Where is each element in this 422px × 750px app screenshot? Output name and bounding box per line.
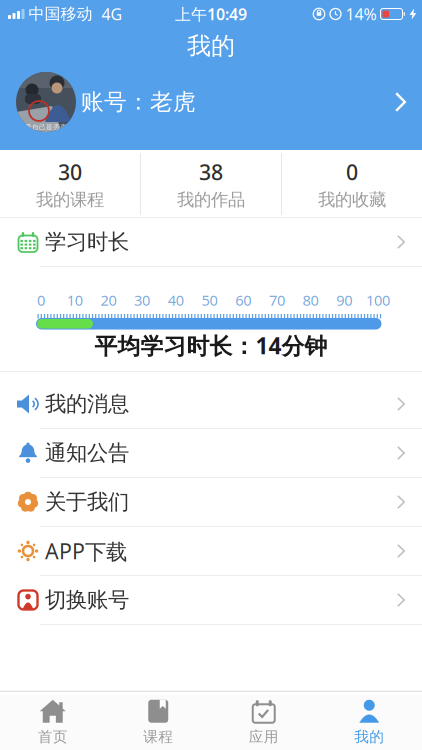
staticText: 30: [58, 158, 82, 186]
staticText: 学习时长: [45, 229, 129, 255]
staticText: 0: [37, 290, 45, 310]
staticText: 80: [303, 290, 319, 310]
staticText: 38: [199, 158, 223, 186]
button[interactable]: APP下载: [0, 527, 422, 576]
staticText: 我的课程: [36, 189, 104, 210]
button[interactable]: 学习时长: [0, 218, 422, 267]
button[interactable]: 30: [0, 158, 140, 210]
staticText: 平均学习时长：14分钟: [94, 330, 327, 360]
staticText: 40: [168, 290, 184, 310]
staticText: 切换账号: [45, 587, 129, 613]
button[interactable]: 关于我们: [0, 478, 422, 527]
staticText: 30: [134, 290, 150, 310]
staticText: 我的消息: [45, 391, 129, 417]
button[interactable]: 应用: [211, 700, 316, 746]
staticText: 课程: [143, 728, 173, 746]
staticText: 上午10:49: [175, 3, 247, 25]
staticText: 50: [201, 290, 217, 310]
staticText: 70: [269, 290, 285, 310]
staticText: 0: [346, 158, 358, 186]
staticText: 我的: [187, 31, 235, 61]
staticText: 90: [336, 290, 352, 310]
staticText: 中国移动: [28, 4, 92, 24]
staticText: 我的: [354, 728, 384, 746]
button[interactable]: 课程: [105, 700, 211, 746]
staticText: 关于我们: [45, 489, 129, 515]
staticText: 14%: [345, 3, 376, 25]
staticText: 我的作品: [177, 189, 245, 210]
staticText: 我的收藏: [318, 189, 386, 210]
staticText: 60: [235, 290, 251, 310]
button[interactable]: 切换账号: [0, 576, 422, 625]
staticText: 账号：老虎: [81, 88, 196, 116]
button[interactable]: 0: [282, 158, 422, 210]
button[interactable]: 看看自己是否喜欢: [0, 72, 422, 132]
button[interactable]: 首页: [0, 700, 105, 746]
staticText: 20: [100, 290, 116, 310]
staticText: 看看自己是否喜欢: [18, 123, 74, 131]
button[interactable]: 38: [141, 158, 281, 210]
staticText: APP下载: [45, 537, 127, 565]
staticText: 通知公告: [45, 440, 129, 466]
staticText: 首页: [38, 728, 68, 746]
staticText: 100: [366, 290, 390, 310]
staticText: 4G: [101, 3, 122, 25]
staticText: 10: [67, 290, 83, 310]
button[interactable]: 我的: [316, 700, 422, 746]
staticText: 应用: [249, 728, 279, 746]
button[interactable]: 我的消息: [0, 380, 422, 429]
button[interactable]: 通知公告: [0, 429, 422, 478]
